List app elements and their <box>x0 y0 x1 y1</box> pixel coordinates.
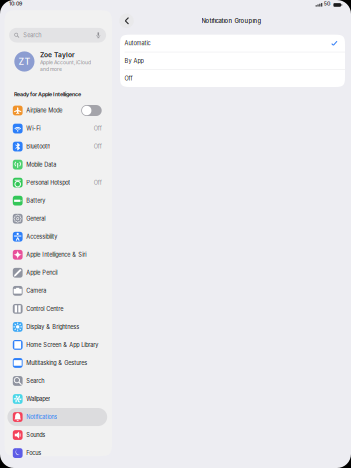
staticText: Airplane Mode <box>26 107 62 114</box>
button[interactable]: Wallpaper <box>7 390 107 408</box>
button[interactable]: Wi-Fi <box>7 119 107 137</box>
staticText: Wi-Fi <box>26 125 40 132</box>
staticText: General <box>26 215 45 222</box>
button[interactable]: Camera <box>7 282 107 300</box>
button[interactable]: Control Centre <box>7 300 107 318</box>
staticText: Home Screen & App Library <box>26 341 98 348</box>
button[interactable]: Personal Hotspot <box>7 174 107 192</box>
staticText: Automatic <box>125 40 151 47</box>
staticText: Multitasking & Gestures <box>26 359 87 366</box>
button[interactable]: Back <box>119 13 134 28</box>
staticText: Off <box>94 179 102 186</box>
button[interactable]: Airplane Mode <box>7 101 107 119</box>
button[interactable]: Search <box>7 372 107 390</box>
button[interactable]: Apple Intelligence & Siri <box>7 246 107 264</box>
staticText: Display & Brightness <box>26 323 79 330</box>
staticText: Control Centre <box>26 305 63 312</box>
staticText: Accessibility <box>26 233 57 240</box>
button[interactable]: Sounds <box>7 426 107 444</box>
button[interactable]: Accessibility <box>7 228 107 246</box>
staticText: Notification Grouping <box>201 17 261 24</box>
staticText: Camera <box>26 287 46 294</box>
staticText: Zoe Taylor <box>40 51 75 59</box>
staticText: Personal Hotspot <box>26 179 70 186</box>
staticText: ZT <box>18 56 30 67</box>
staticText: Focus <box>26 450 41 456</box>
staticText: 10:09 <box>9 0 22 7</box>
button[interactable]: Search <box>9 28 106 42</box>
staticText: Off <box>125 75 133 82</box>
button[interactable]: Mobile Data <box>7 156 107 174</box>
staticText: Notifications <box>26 414 57 420</box>
staticText: Off <box>94 143 102 150</box>
button[interactable]: Multitasking & Gestures <box>7 354 107 372</box>
staticText: Mobile Data <box>26 161 56 168</box>
button[interactable]: Battery <box>7 192 107 210</box>
button[interactable]: Automatic <box>120 35 345 52</box>
staticText: Wallpaper <box>26 396 50 402</box>
staticText: Battery <box>26 197 45 204</box>
staticText: Apple Account, iCloud <box>40 59 91 65</box>
staticText: Off <box>94 125 102 132</box>
staticText: and more <box>40 66 62 72</box>
staticText: By App <box>125 57 144 64</box>
staticText: Search <box>26 378 44 384</box>
button[interactable]: Apple Pencil <box>7 264 107 282</box>
staticText: Apple Intelligence & Siri <box>26 251 86 258</box>
button[interactable]: General <box>7 210 107 228</box>
button[interactable]: Focus <box>7 444 107 462</box>
button[interactable]: Bluetooth <box>7 138 107 156</box>
button[interactable]: Notifications <box>7 408 107 426</box>
button[interactable]: By App <box>120 52 345 69</box>
staticText: Apple Pencil <box>26 269 57 276</box>
staticText: Search <box>23 32 41 39</box>
button[interactable]: Off <box>120 70 345 87</box>
staticText: Ready for Apple Intelligence <box>14 91 81 97</box>
button[interactable]: Display & Brightness <box>7 318 107 336</box>
button[interactable]: Home Screen & App Library <box>7 336 107 354</box>
button[interactable]: ZT <box>4 42 112 80</box>
staticText: 5G <box>324 1 331 7</box>
staticText: Sounds <box>26 432 45 438</box>
staticText: Bluetooth <box>26 143 50 150</box>
